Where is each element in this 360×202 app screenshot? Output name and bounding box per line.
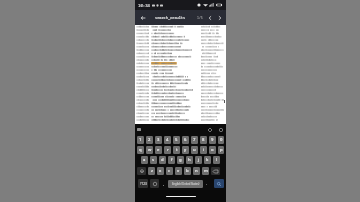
button[interactable]: o [209,146,216,154]
button[interactable]: 5 [173,136,180,144]
staticText: p [220,147,223,153]
button[interactable]: f [168,156,175,164]
button[interactable]: Back [137,12,148,23]
button[interactable]: 8 [200,136,207,144]
button[interactable]: l [213,156,220,164]
button[interactable]: 1 [137,136,144,144]
staticText: r [167,147,169,153]
staticText: s [152,157,155,163]
staticText: z [151,168,153,174]
staticText: n [195,168,198,174]
staticText: d [161,157,164,163]
button[interactable]: g [177,156,184,164]
staticText: k [206,157,209,163]
staticText: 4 [166,137,169,143]
button[interactable]: d [159,156,166,164]
button[interactable]: t [173,146,180,154]
button[interactable]: English (United States) [168,180,203,188]
button[interactable]: p [218,146,224,154]
staticText: , [163,181,165,186]
button[interactable]: Search [214,179,224,188]
staticText: 0 [220,137,223,143]
staticText: c [168,168,171,174]
staticText: m [204,168,208,174]
button[interactable]: 3 [155,136,162,144]
staticText: x [159,168,162,174]
button[interactable]: r [164,146,171,154]
staticText: 1 [139,137,142,143]
staticText: v [177,168,180,174]
staticText: q [139,147,142,153]
staticText: 3 [157,137,160,143]
button[interactable]: 2 [146,136,153,144]
staticText: 10:34 [138,3,150,8]
button[interactable]: Previous match [206,14,214,22]
staticText: l [216,157,218,163]
staticText: w [148,147,152,153]
staticText: e [157,147,160,153]
staticText: b [186,168,189,174]
button[interactable]: q [137,146,144,154]
button[interactable]: 0 [218,136,224,144]
button[interactable]: j [195,156,202,164]
button[interactable]: n [193,167,200,175]
button[interactable]: m [202,167,209,175]
staticText: t [176,147,178,153]
button[interactable]: c [166,167,173,175]
staticText: 9 [211,137,214,143]
button[interactable]: w [146,146,153,154]
staticText: h [188,157,191,163]
staticText: 2 [148,137,151,143]
button[interactable]: . [203,179,211,188]
button[interactable]: Emoji [150,179,159,188]
button[interactable]: b [184,167,191,175]
staticText: o [211,147,214,153]
button[interactable]: ?123 [138,179,148,188]
staticText: i [203,147,205,153]
button[interactable]: z [148,167,155,175]
staticText: a [143,157,146,163]
button[interactable]: 4 [164,136,171,144]
staticText: 8 [202,137,205,143]
button[interactable]: Backspace [211,167,220,175]
button[interactable]: Next match [216,14,224,22]
staticText: English (United States) [172,182,200,186]
button[interactable]: e [155,146,162,154]
staticText: u [193,147,196,153]
button[interactable]: 6 [182,136,189,144]
button[interactable]: u [191,146,198,154]
button[interactable]: k [204,156,211,164]
button[interactable] [135,25,226,124]
button[interactable]: 7 [191,136,198,144]
button[interactable]: 9 [209,136,216,144]
button[interactable]: y [182,146,189,154]
button[interactable]: Shift [137,167,146,175]
button[interactable]: a [141,156,148,164]
staticText: 6 [184,137,187,143]
staticText: 5 [175,137,178,143]
staticText: g [179,157,182,163]
staticText: j [198,157,200,163]
button[interactable]: Stickers [206,126,213,133]
button[interactable]: h [186,156,193,164]
button[interactable]: Settings [217,126,224,133]
staticText: 1/5 [197,16,203,20]
button[interactable]: s [150,156,157,164]
button[interactable]: x [157,167,164,175]
staticText: y [184,147,187,153]
staticText: f [171,157,173,163]
staticText: search_results [155,15,186,20]
staticText: . [206,181,208,186]
button[interactable]: , [160,179,168,188]
staticText: 7 [193,137,196,143]
button[interactable]: i [200,146,207,154]
staticText: ?123 [140,182,147,186]
button[interactable]: v [175,167,182,175]
button[interactable]: Clipboard [137,128,141,131]
